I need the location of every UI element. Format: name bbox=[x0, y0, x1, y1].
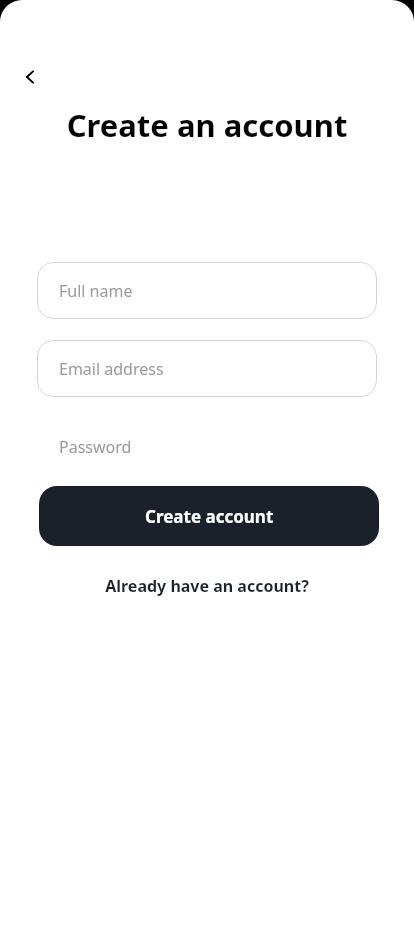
staticText: Email address bbox=[59, 358, 164, 380]
staticText: Create account bbox=[145, 505, 274, 528]
button[interactable]: Back bbox=[11, 57, 51, 97]
button[interactable]: Full name bbox=[37, 262, 377, 319]
staticText: Create an account bbox=[0, 104, 414, 146]
staticText: Already have an account? bbox=[105, 575, 309, 597]
staticText: Full name bbox=[59, 280, 133, 302]
button[interactable]: Password bbox=[37, 418, 377, 475]
button[interactable]: Already have an account? bbox=[37, 571, 377, 601]
staticText: Password bbox=[59, 436, 132, 458]
button[interactable]: Email address bbox=[37, 340, 377, 397]
button[interactable]: Create account bbox=[39, 486, 379, 546]
